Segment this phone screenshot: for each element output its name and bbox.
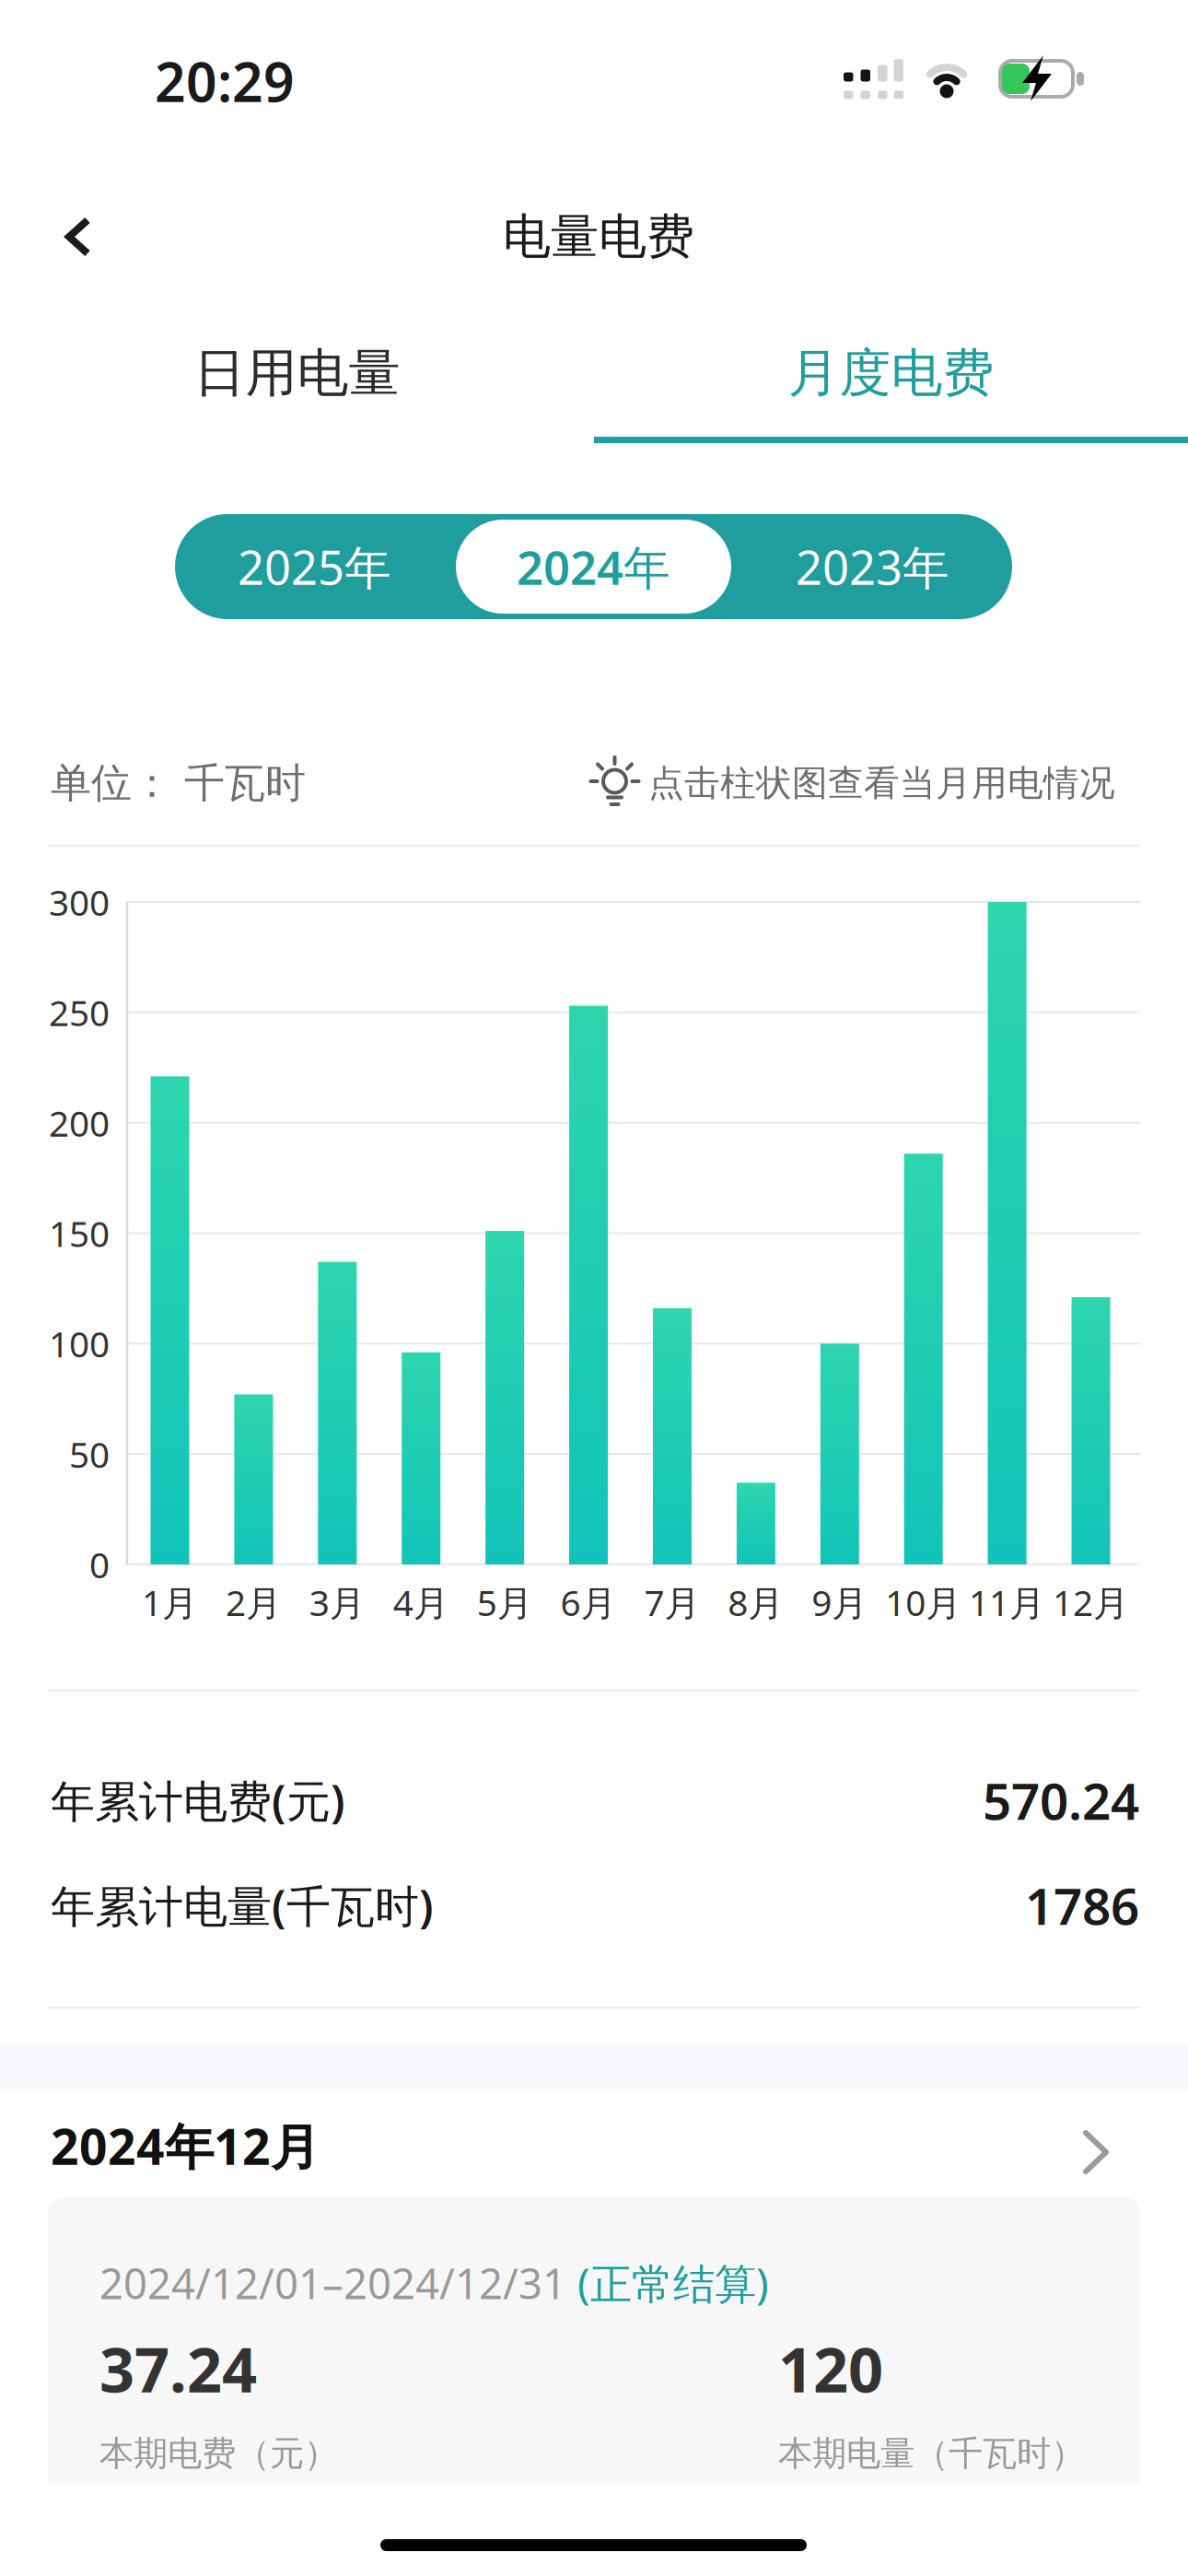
button[interactable]: 2024/12/01–2024/12/31 [48, 2197, 1140, 2483]
staticText: 2024年 [517, 536, 670, 598]
staticText: 月度电费 [788, 341, 994, 405]
staticText: 12月 [1053, 1578, 1129, 1626]
button[interactable]: 10月 [904, 1154, 943, 1564]
button[interactable]: 7月 [653, 1308, 692, 1564]
staticText: 2月 [226, 1578, 282, 1626]
button[interactable]: 2月 [234, 1394, 273, 1564]
staticText: 年累计电费(元) [51, 1771, 345, 1830]
button[interactable]: 12月 [1072, 1297, 1110, 1564]
staticText: 20:29 [155, 45, 295, 117]
staticText: 9月 [812, 1578, 868, 1626]
staticText: 5月 [477, 1578, 533, 1626]
staticText: 150 [49, 1210, 110, 1257]
button[interactable]: 11月 [988, 902, 1026, 1564]
staticText: 本期电费（元） [99, 2432, 338, 2475]
staticText: 日用电量 [194, 341, 400, 405]
button[interactable]: 5月 [485, 1231, 524, 1564]
button[interactable]: 6月 [569, 1006, 608, 1564]
staticText: 300 [49, 878, 110, 926]
button[interactable]: 月度电费 [594, 332, 1188, 443]
staticText: 37.24 [99, 2328, 257, 2409]
button[interactable]: 9月 [820, 1344, 859, 1564]
staticText: 100 [49, 1320, 110, 1367]
staticText: 年累计电量(千瓦时) [51, 1876, 434, 1935]
staticText: (正常结算) [577, 2255, 769, 2311]
button[interactable]: 日用电量 [0, 332, 594, 415]
staticText: 11月 [969, 1578, 1045, 1626]
staticText: 1786 [1025, 1872, 1139, 1939]
button[interactable]: 4月 [402, 1352, 440, 1564]
staticText: 单位： 千瓦时 [51, 758, 306, 808]
button[interactable]: 2024年12月 [0, 2113, 1188, 2192]
button[interactable]: 2025年 [175, 514, 454, 619]
button[interactable]: 3月 [318, 1262, 357, 1564]
staticText: 0 [89, 1541, 110, 1588]
staticText: 8月 [728, 1578, 784, 1626]
staticText: 6月 [560, 1578, 617, 1626]
button[interactable]: 2024年 [454, 514, 733, 619]
staticText: 电量电费 [503, 207, 694, 266]
button[interactable]: 8月 [737, 1483, 775, 1564]
staticText: 1月 [142, 1578, 198, 1626]
button[interactable]: 1月 [151, 1076, 189, 1564]
staticText: 50 [69, 1430, 110, 1478]
staticText: 7月 [644, 1578, 700, 1626]
button[interactable]: 返回 [43, 207, 113, 266]
staticText: 10月 [885, 1578, 962, 1626]
staticText: 250 [49, 989, 110, 1036]
staticText: 2024年12月 [51, 2113, 320, 2178]
staticText: 2024/12/01–2024/12/31 [99, 2255, 577, 2311]
staticText: 4月 [393, 1578, 449, 1626]
staticText: 570.24 [983, 1767, 1139, 1834]
staticText: 3月 [309, 1578, 365, 1626]
staticText: 2025年 [238, 536, 391, 598]
staticText: 200 [49, 1099, 110, 1146]
staticText: 点击柱状图查看当月用电情况 [648, 761, 1115, 805]
staticText: 2023年 [796, 536, 949, 598]
button[interactable]: 2023年 [733, 514, 1012, 619]
staticText: 120 [778, 2328, 883, 2409]
staticText: 本期电量（千瓦时） [778, 2432, 1085, 2475]
